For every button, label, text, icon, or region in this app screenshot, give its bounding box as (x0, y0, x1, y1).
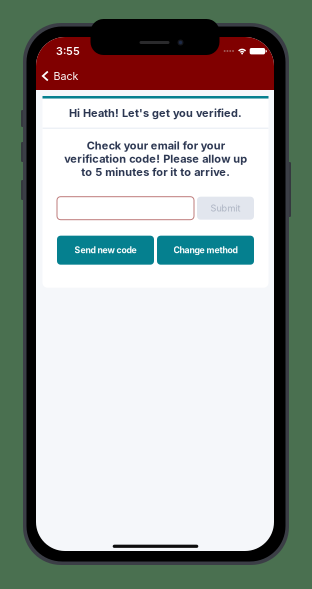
staticText: Change method (173, 245, 237, 255)
staticText: Check your email for your verification c… (64, 139, 247, 179)
button[interactable]: Send new code (57, 236, 154, 265)
staticText: Submit (210, 203, 240, 214)
staticText: Back (54, 69, 79, 82)
button[interactable]: Submit (197, 197, 254, 220)
staticText: Send new code (74, 245, 136, 255)
button[interactable]: Back (36, 62, 87, 90)
staticText: Hi Heath! Let's get you verified. (69, 106, 242, 120)
button[interactable]: Change method (157, 236, 254, 265)
staticText: 3:55 (56, 44, 80, 57)
